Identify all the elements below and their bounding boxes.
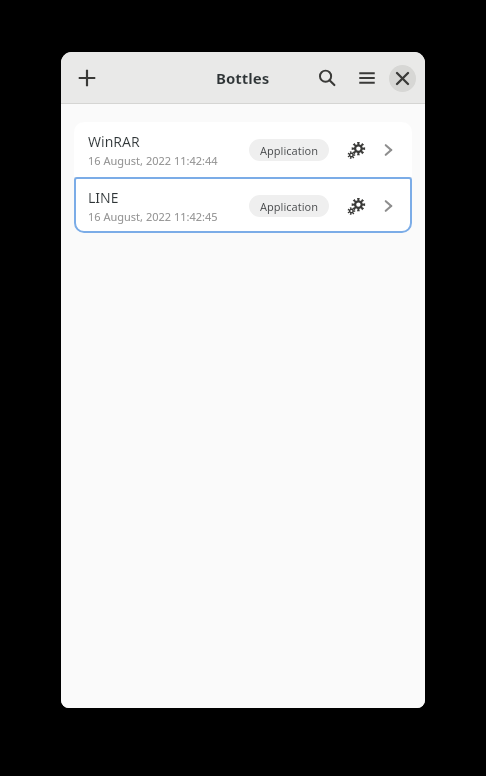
- button[interactable]: LINE: [74, 178, 412, 233]
- button[interactable]: Open bottle details: [375, 193, 401, 219]
- button[interactable]: Add bottle: [70, 61, 104, 95]
- button[interactable]: Close: [389, 65, 416, 92]
- staticText: 16 August, 2022 11:42:45: [88, 209, 218, 224]
- button[interactable]: WinRAR: [74, 122, 412, 177]
- staticText: Application: [260, 143, 318, 158]
- button[interactable]: Search: [310, 61, 344, 95]
- staticText: Bottles: [216, 68, 270, 88]
- button[interactable]: Open bottle details: [375, 137, 401, 163]
- staticText: WinRAR: [88, 132, 140, 151]
- staticText: 16 August, 2022 11:42:44: [88, 153, 218, 168]
- button[interactable]: Main menu: [350, 61, 384, 95]
- button[interactable]: Bottle settings: [343, 193, 369, 219]
- button[interactable]: Bottle settings: [343, 137, 369, 163]
- staticText: Application: [260, 199, 318, 214]
- staticText: LINE: [88, 188, 119, 207]
